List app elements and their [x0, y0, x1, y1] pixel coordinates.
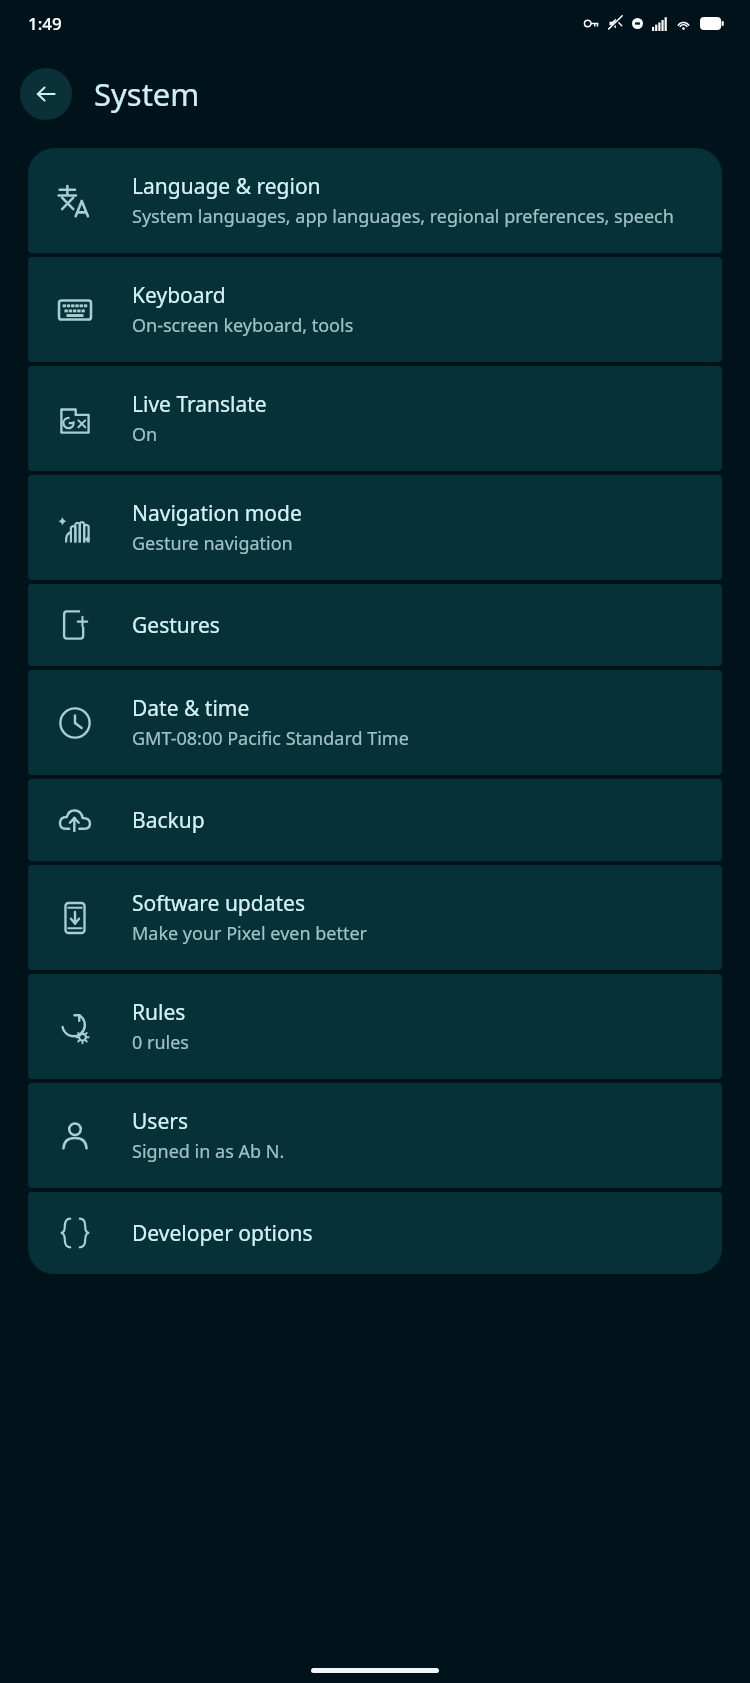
staticText: Language & region [132, 172, 321, 201]
button[interactable]: Keyboard [28, 257, 722, 362]
button[interactable]: Users [28, 1083, 722, 1188]
button[interactable]: Backup [28, 779, 722, 861]
staticText: Developer options [132, 1219, 313, 1248]
staticText: System [94, 73, 200, 115]
button[interactable]: Gestures [28, 584, 722, 666]
button[interactable]: Date & time [28, 670, 722, 775]
staticText: 0 rules [132, 1030, 189, 1055]
staticText: Navigation mode [132, 499, 302, 528]
button[interactable]: Developer options [28, 1192, 722, 1274]
button[interactable]: Rules [28, 974, 722, 1079]
button[interactable]: Language & region [28, 148, 722, 253]
staticText: 1:49 [28, 12, 62, 35]
staticText: Users [132, 1107, 188, 1136]
staticText: Keyboard [132, 281, 226, 310]
button[interactable]: Live Translate [28, 366, 722, 471]
staticText: Make your Pixel even better [132, 921, 368, 946]
staticText: System languages, app languages, regiona… [132, 204, 674, 229]
staticText: Gestures [132, 611, 220, 640]
staticText: On [132, 422, 158, 447]
staticText: Software updates [132, 889, 305, 918]
staticText: Live Translate [132, 390, 267, 419]
staticText: On-screen keyboard, tools [132, 313, 354, 338]
staticText: Rules [132, 998, 186, 1027]
staticText: Date & time [132, 694, 250, 723]
staticText: Backup [132, 806, 205, 835]
button[interactable]: Software updates [28, 865, 722, 970]
staticText: Gesture navigation [132, 531, 293, 556]
button[interactable]: Back [20, 68, 72, 120]
staticText: GMT-08:00 Pacific Standard Time [132, 726, 409, 751]
button[interactable]: Navigation mode [28, 475, 722, 580]
staticText: Signed in as Ab N. [132, 1139, 285, 1164]
